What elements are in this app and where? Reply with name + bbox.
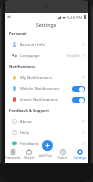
button[interactable]: Smart Notifications	[5, 94, 88, 105]
button[interactable]: Market	[21, 149, 37, 163]
staticText: English	[67, 53, 80, 58]
staticText: Market	[24, 156, 35, 160]
staticText: Notifications	[9, 64, 35, 69]
staticText: Orders	[57, 156, 68, 160]
button[interactable]: About	[5, 116, 88, 127]
staticText: Mobile Notifications	[20, 86, 60, 92]
button[interactable]: Toggle	[72, 97, 85, 103]
staticText: About	[20, 119, 32, 125]
staticText: Passwords	[5, 156, 21, 160]
button[interactable]: Toggle	[72, 86, 85, 92]
staticText: Personal	[9, 31, 27, 36]
staticText: Feedback	[20, 141, 39, 147]
button[interactable]: Passwords	[5, 149, 21, 163]
staticText: My Notifications	[20, 75, 52, 81]
staticText: Account Info	[20, 42, 45, 48]
button[interactable]: Language	[5, 50, 88, 61]
button[interactable]: Settings	[71, 149, 88, 163]
button[interactable]: Orders	[54, 149, 71, 163]
button[interactable]: Add Post	[42, 140, 53, 151]
button[interactable]: My Notifications	[5, 72, 88, 83]
staticText: Language	[20, 53, 40, 59]
staticText: Help	[20, 130, 30, 136]
button[interactable]: Account Info	[5, 39, 88, 50]
staticText: Feedback & Support	[9, 108, 49, 113]
staticText: Settings	[36, 21, 57, 28]
button[interactable]: Help	[5, 127, 88, 138]
staticText: 5:48 PM	[67, 15, 83, 20]
staticText: Settings	[74, 156, 86, 160]
staticText: Smart Notifications	[20, 97, 58, 103]
staticText: Add Post	[39, 154, 52, 158]
button[interactable]: Feedback	[5, 138, 88, 149]
button[interactable]: Mobile Notifications	[5, 83, 88, 94]
